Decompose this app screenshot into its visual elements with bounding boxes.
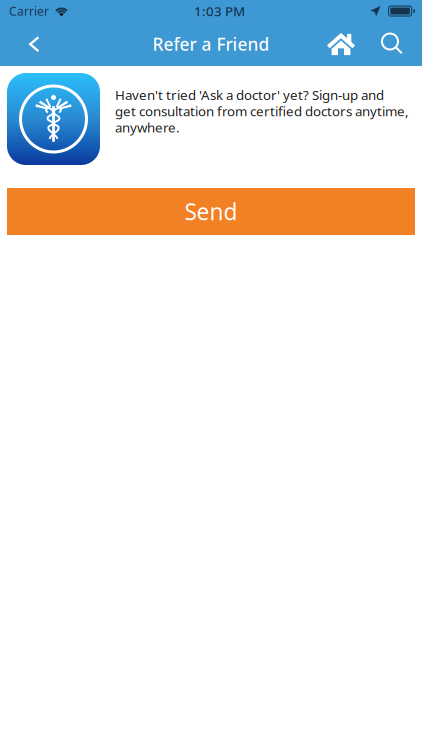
- button[interactable]: Search: [370, 22, 415, 66]
- button[interactable]: Back: [12, 22, 54, 66]
- staticText: Refer a Friend: [152, 32, 269, 55]
- button[interactable]: Send: [7, 188, 415, 235]
- staticText: Haven't tried 'Ask a doctor' yet? Sign-u…: [115, 86, 409, 136]
- staticText: 1:03 PM: [194, 2, 245, 20]
- staticText: Send: [184, 196, 237, 226]
- staticText: Carrier: [9, 3, 49, 19]
- button[interactable]: Home: [312, 22, 370, 66]
